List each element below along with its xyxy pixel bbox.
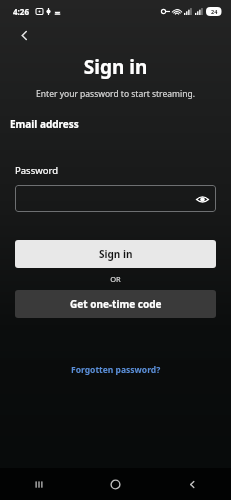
staticText: Get one-time code (70, 297, 162, 311)
staticText: Sign in (99, 247, 133, 261)
staticText: Forgotten password? (71, 364, 161, 376)
staticText: Sign in (0, 54, 231, 80)
staticText: Enter your password to start streaming. (0, 88, 231, 100)
staticText: 4:26 (13, 6, 29, 17)
button[interactable]: Forgotten password? (0, 364, 231, 376)
staticText: Email address (10, 117, 79, 131)
button[interactable]: Recents (0, 468, 77, 500)
button[interactable]: Sign in (15, 240, 216, 268)
button[interactable]: Get one-time code (15, 290, 216, 318)
button[interactable]: Back (154, 468, 231, 500)
button[interactable]: Show password (195, 192, 209, 206)
staticText: Password (15, 164, 58, 177)
staticText: OR (0, 274, 231, 284)
button[interactable]: Home (77, 468, 154, 500)
staticText: 24 (211, 8, 218, 15)
button[interactable]: Back (12, 23, 36, 47)
button[interactable]: Show password (15, 185, 216, 212)
